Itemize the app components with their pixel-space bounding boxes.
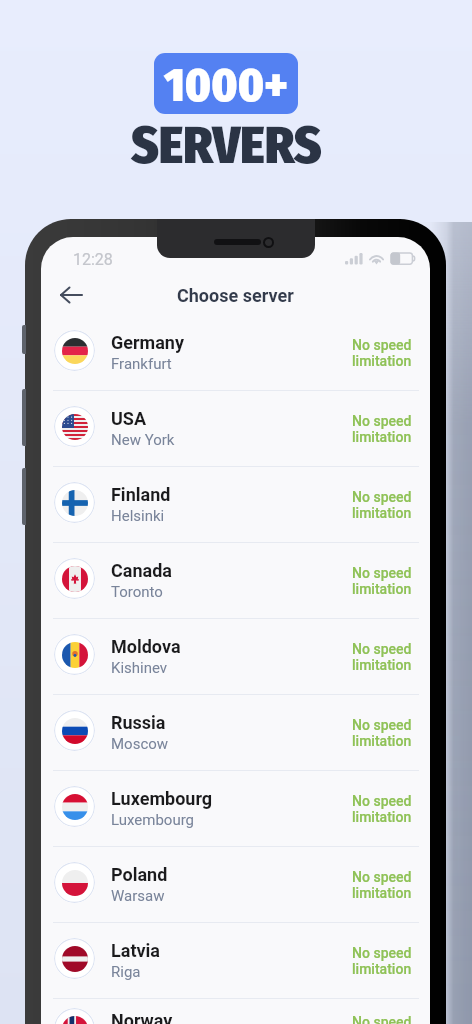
staticText: Canada [111, 560, 172, 581]
button[interactable]: Back [45, 275, 97, 315]
button[interactable]: Moldova [41, 619, 430, 694]
button[interactable]: Finland [41, 467, 430, 542]
staticText: Luxembourg [111, 811, 195, 829]
staticText: Choose server [177, 285, 294, 306]
staticText: limitation [352, 429, 412, 445]
staticText: limitation [352, 809, 412, 825]
button[interactable]: Germany [41, 315, 430, 390]
staticText: Finland [111, 484, 171, 505]
staticText: USA [111, 408, 147, 429]
staticText: No speed [352, 413, 412, 429]
staticText: Norway [111, 1010, 173, 1024]
staticText: limitation [352, 961, 412, 977]
staticText: 12:28 [73, 250, 113, 269]
button[interactable]: Russia [41, 695, 430, 770]
staticText: Riga [111, 963, 141, 981]
staticText: SERVERS [131, 114, 322, 176]
staticText: No speed [352, 945, 412, 961]
staticText: Frankfurt [111, 355, 172, 373]
staticText: No speed [352, 793, 412, 809]
staticText: limitation [352, 353, 412, 369]
staticText: No speed [352, 1014, 412, 1024]
staticText: limitation [352, 657, 412, 673]
staticText: limitation [352, 505, 412, 521]
staticText: Moscow [111, 735, 169, 753]
button[interactable]: Latvia [41, 923, 430, 998]
button[interactable]: Poland [41, 847, 430, 922]
staticText: No speed [352, 717, 412, 733]
staticText: No speed [352, 565, 412, 581]
button[interactable]: Canada [41, 543, 430, 618]
staticText: No speed [352, 641, 412, 657]
staticText: Russia [111, 712, 166, 733]
staticText: Toronto [111, 583, 163, 601]
staticText: Luxembourg [111, 788, 213, 809]
button[interactable]: Luxembourg [41, 771, 430, 846]
staticText: No speed [352, 869, 412, 885]
button[interactable]: USA [41, 391, 430, 466]
staticText: Helsinki [111, 507, 165, 525]
staticText: Poland [111, 864, 168, 885]
staticText: Kishinev [111, 659, 168, 677]
staticText: limitation [352, 581, 412, 597]
staticText: 1000+ [164, 57, 288, 113]
staticText: Warsaw [111, 887, 165, 905]
staticText: New York [111, 431, 175, 449]
staticText: No speed [352, 337, 412, 353]
staticText: Moldova [111, 636, 181, 657]
button[interactable]: Norway [41, 999, 430, 1024]
staticText: Germany [111, 332, 184, 353]
staticText: No speed [352, 489, 412, 505]
staticText: limitation [352, 885, 412, 901]
staticText: limitation [352, 733, 412, 749]
staticText: Latvia [111, 940, 161, 961]
